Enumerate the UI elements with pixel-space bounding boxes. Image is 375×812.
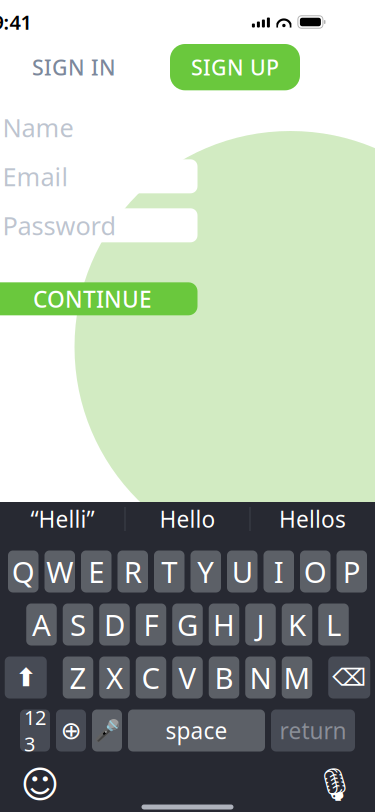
staticText: I [274, 552, 284, 591]
button[interactable]: Shift [5, 656, 47, 698]
staticText: J [256, 605, 264, 644]
button[interactable]: W [44, 550, 75, 592]
button[interactable]: C [136, 656, 166, 698]
staticText: space [165, 715, 227, 745]
button[interactable]: “Helli” [0, 496, 124, 541]
staticText: return [279, 715, 346, 745]
staticText: R [124, 552, 142, 591]
staticText: ⌫ [332, 664, 366, 691]
button[interactable]: Password [0, 208, 197, 242]
staticText: V [178, 658, 196, 697]
button[interactable]: F [136, 603, 166, 645]
button[interactable]: E [81, 550, 111, 592]
staticText: F [143, 605, 158, 644]
button[interactable]: H [209, 603, 239, 645]
staticText: Email [2, 159, 68, 193]
staticText: Z [69, 658, 86, 697]
button[interactable]: Next keyboard [56, 709, 86, 751]
staticText: ⬆ [15, 663, 36, 692]
button[interactable]: Hello [125, 496, 249, 541]
staticText: SIGN IN [32, 53, 116, 81]
staticText: P [343, 552, 361, 591]
staticText: L [326, 605, 341, 644]
button[interactable]: D [99, 603, 130, 645]
button[interactable]: Emoji [20, 764, 60, 804]
button[interactable]: Name [0, 110, 197, 144]
staticText: ☺ [20, 763, 59, 806]
button[interactable]: Z [63, 656, 93, 698]
staticText: 9:41 [0, 9, 31, 35]
button[interactable]: O [300, 550, 330, 592]
staticText: 123 [24, 704, 46, 757]
button[interactable]: I [263, 550, 294, 592]
button[interactable]: B [209, 656, 239, 698]
button[interactable]: G [172, 603, 203, 645]
staticText: W [46, 552, 73, 591]
staticText: Y [197, 552, 214, 591]
button[interactable]: Dictation [315, 764, 355, 804]
staticText: 🎙 [314, 766, 355, 803]
staticText: Hellos [279, 504, 346, 534]
button[interactable]: SIGN IN [18, 44, 130, 90]
staticText: A [32, 605, 51, 644]
button[interactable]: Y [190, 550, 221, 592]
staticText: E [88, 552, 104, 591]
staticText: Hello [159, 504, 215, 534]
staticText: T [161, 552, 177, 591]
staticText: O [304, 552, 327, 591]
button[interactable]: M [282, 656, 312, 698]
staticText: G [177, 605, 198, 644]
staticText: D [104, 605, 125, 644]
button[interactable]: Email [0, 159, 197, 193]
staticText: N [249, 658, 271, 697]
button[interactable]: space [128, 709, 265, 751]
button[interactable]: return [271, 709, 355, 751]
button[interactable]: Hellos [250, 496, 374, 541]
button[interactable]: Delete [328, 656, 370, 698]
button[interactable]: V [172, 656, 203, 698]
button[interactable]: N [245, 656, 276, 698]
staticText: “Helli” [30, 504, 94, 534]
staticText: Name [2, 110, 73, 144]
button[interactable]: P [336, 550, 367, 592]
staticText: X [106, 658, 123, 697]
staticText: B [214, 658, 233, 697]
button[interactable]: Q [8, 550, 38, 592]
staticText: ⊕ [60, 716, 81, 745]
button[interactable]: S [63, 603, 93, 645]
button[interactable]: K [282, 603, 312, 645]
staticText: Q [12, 552, 35, 591]
button[interactable]: Dictate [92, 709, 122, 751]
staticText: S [70, 605, 86, 644]
button[interactable]: R [117, 550, 148, 592]
button[interactable]: SIGN UP [170, 44, 300, 90]
button[interactable]: CONTINUE [0, 282, 197, 315]
button[interactable]: L [318, 603, 349, 645]
staticText: U [232, 552, 253, 591]
staticText: 🎤 [93, 718, 120, 743]
staticText: SIGN UP [191, 53, 279, 81]
staticText: Password [2, 208, 116, 242]
button[interactable]: T [154, 550, 184, 592]
button[interactable]: J [245, 603, 276, 645]
button[interactable]: A [26, 603, 57, 645]
staticText: H [213, 605, 235, 644]
staticText: K [288, 605, 306, 644]
staticText: CONTINUE [33, 284, 152, 314]
staticText: M [283, 658, 310, 697]
button[interactable]: 123 [20, 709, 50, 751]
button[interactable]: X [99, 656, 130, 698]
button[interactable]: U [227, 550, 257, 592]
staticText: C [141, 658, 160, 697]
